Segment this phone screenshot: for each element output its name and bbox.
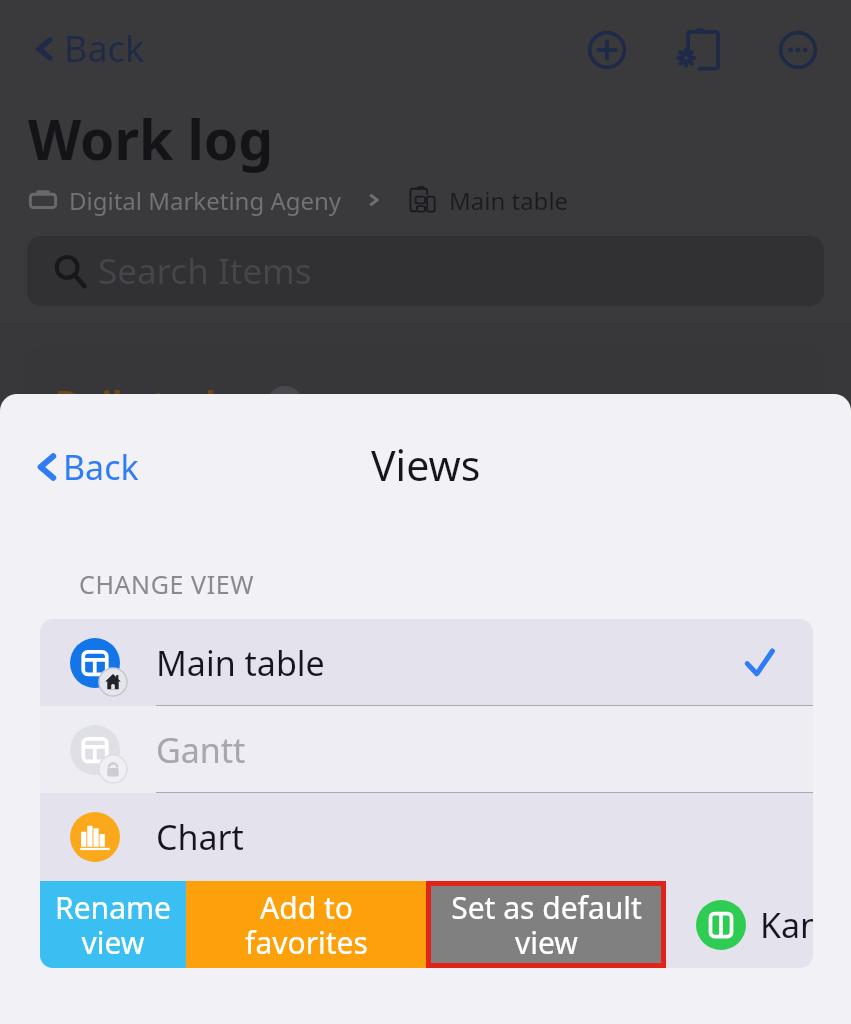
staticText: Chart bbox=[156, 814, 244, 860]
staticText: Rename view bbox=[55, 887, 171, 963]
button[interactable]: Add bbox=[573, 16, 641, 84]
button[interactable]: Board settings bbox=[666, 16, 734, 84]
button[interactable]: Rename view bbox=[40, 881, 186, 968]
staticText: Views bbox=[371, 437, 481, 493]
staticText: Add to favorites bbox=[245, 887, 368, 963]
staticText: Main table bbox=[156, 640, 325, 686]
button[interactable]: Kanban bbox=[666, 881, 813, 968]
button[interactable]: More options bbox=[764, 16, 832, 84]
staticText: Main table bbox=[449, 184, 569, 217]
button[interactable]: Add to favorites bbox=[186, 881, 426, 968]
staticText: Set as default view bbox=[451, 887, 642, 963]
staticText: Daily tasks bbox=[55, 380, 245, 428]
button[interactable]: Back bbox=[31, 444, 139, 490]
staticText: Search Items bbox=[98, 247, 312, 295]
staticText: Back bbox=[64, 24, 145, 73]
button[interactable]: Set as default view bbox=[426, 881, 666, 968]
staticText: Kanban bbox=[760, 902, 813, 948]
staticText: Digital Marketing Ageny bbox=[69, 184, 342, 217]
button[interactable]: Gantt bbox=[40, 706, 813, 793]
staticText: CHANGE VIEW bbox=[79, 567, 255, 601]
button[interactable]: Back bbox=[30, 24, 145, 73]
staticText: Work log bbox=[28, 101, 273, 176]
staticText: Back bbox=[63, 444, 139, 490]
staticText: Gantt bbox=[156, 727, 246, 773]
button[interactable]: Search Items bbox=[27, 236, 824, 306]
button[interactable]: Chart bbox=[40, 793, 813, 881]
button[interactable]: Main table bbox=[40, 619, 813, 706]
